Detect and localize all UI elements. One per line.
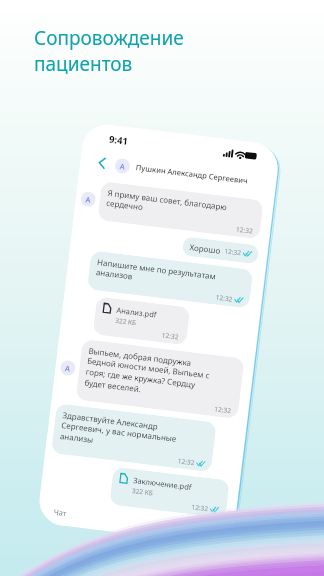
button[interactable]: Заключение.pdf	[109, 467, 230, 518]
staticText: 12:32	[214, 404, 232, 415]
staticText: Анализ.pdf	[116, 305, 158, 320]
staticText: 12:32	[215, 293, 233, 304]
staticText: Пушкин Александр Сергеевич	[135, 162, 249, 186]
staticText: Здравствуйте Александр Сергеевич, у вас …	[59, 409, 178, 456]
staticText: A	[85, 194, 91, 205]
staticText: Чат	[53, 507, 67, 518]
staticText: Заключение.pdf	[133, 475, 192, 492]
staticText: пациентов	[34, 51, 133, 77]
staticText: 9:41	[108, 133, 129, 148]
button[interactable]: Анализ.pdf	[92, 296, 190, 345]
staticText: Напишите мне по результатам анализов	[95, 256, 217, 292]
staticText: Хорошо	[189, 241, 221, 256]
staticText: 12:32	[236, 225, 254, 236]
staticText: 322 КБ	[131, 486, 153, 497]
staticText: 12:32	[191, 502, 209, 513]
staticText: 12:32	[161, 330, 179, 341]
button[interactable]: Напишите мне по результатам анализов	[87, 250, 253, 309]
staticText: Сопровождение	[34, 25, 184, 51]
button[interactable]: Выпьем, добрая подружка Бедной юности мо…	[75, 339, 245, 419]
staticText: Я приму ваш совет, благодарю сердечно	[106, 187, 228, 223]
staticText: 12:32	[177, 456, 195, 467]
staticText: A	[65, 363, 71, 374]
button[interactable]: Здравствуйте Александр Сергеевич, у вас …	[51, 403, 217, 472]
staticText: Выпьем, добрая подружка Бедной юности мо…	[84, 345, 212, 403]
button[interactable]: Back	[93, 154, 111, 172]
staticText: 12:32	[224, 246, 242, 257]
staticText: 322 КБ	[115, 316, 137, 327]
button[interactable]: Хорошо	[182, 236, 259, 264]
staticText: A	[119, 161, 125, 172]
button[interactable]: Я приму ваш совет, благодарю сердечно	[97, 181, 264, 239]
